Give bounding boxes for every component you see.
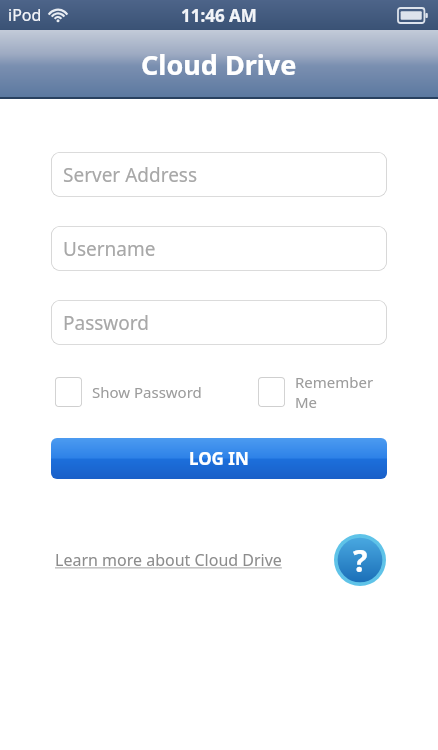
staticText: Username <box>63 236 156 262</box>
staticText: iPod <box>8 4 42 26</box>
staticText: Remember Me <box>295 372 387 412</box>
staticText: Show Password <box>92 382 202 402</box>
button[interactable]: Show Password <box>55 377 202 407</box>
staticText: 11:46 AM <box>181 4 257 27</box>
staticText: Password <box>63 310 149 336</box>
button[interactable]: Learn more about Cloud Drive <box>55 549 282 571</box>
button[interactable]: Remember Me <box>258 372 387 412</box>
staticText: LOG IN <box>189 447 249 470</box>
button[interactable]: Help <box>334 534 386 586</box>
button[interactable]: LOG IN <box>51 438 387 479</box>
button[interactable]: Username <box>51 226 387 271</box>
button[interactable]: Server Address <box>51 152 387 197</box>
staticText: Server Address <box>63 162 198 188</box>
staticText: ? <box>353 540 368 581</box>
button[interactable]: Password <box>51 300 387 345</box>
staticText: Cloud Drive <box>141 46 297 83</box>
